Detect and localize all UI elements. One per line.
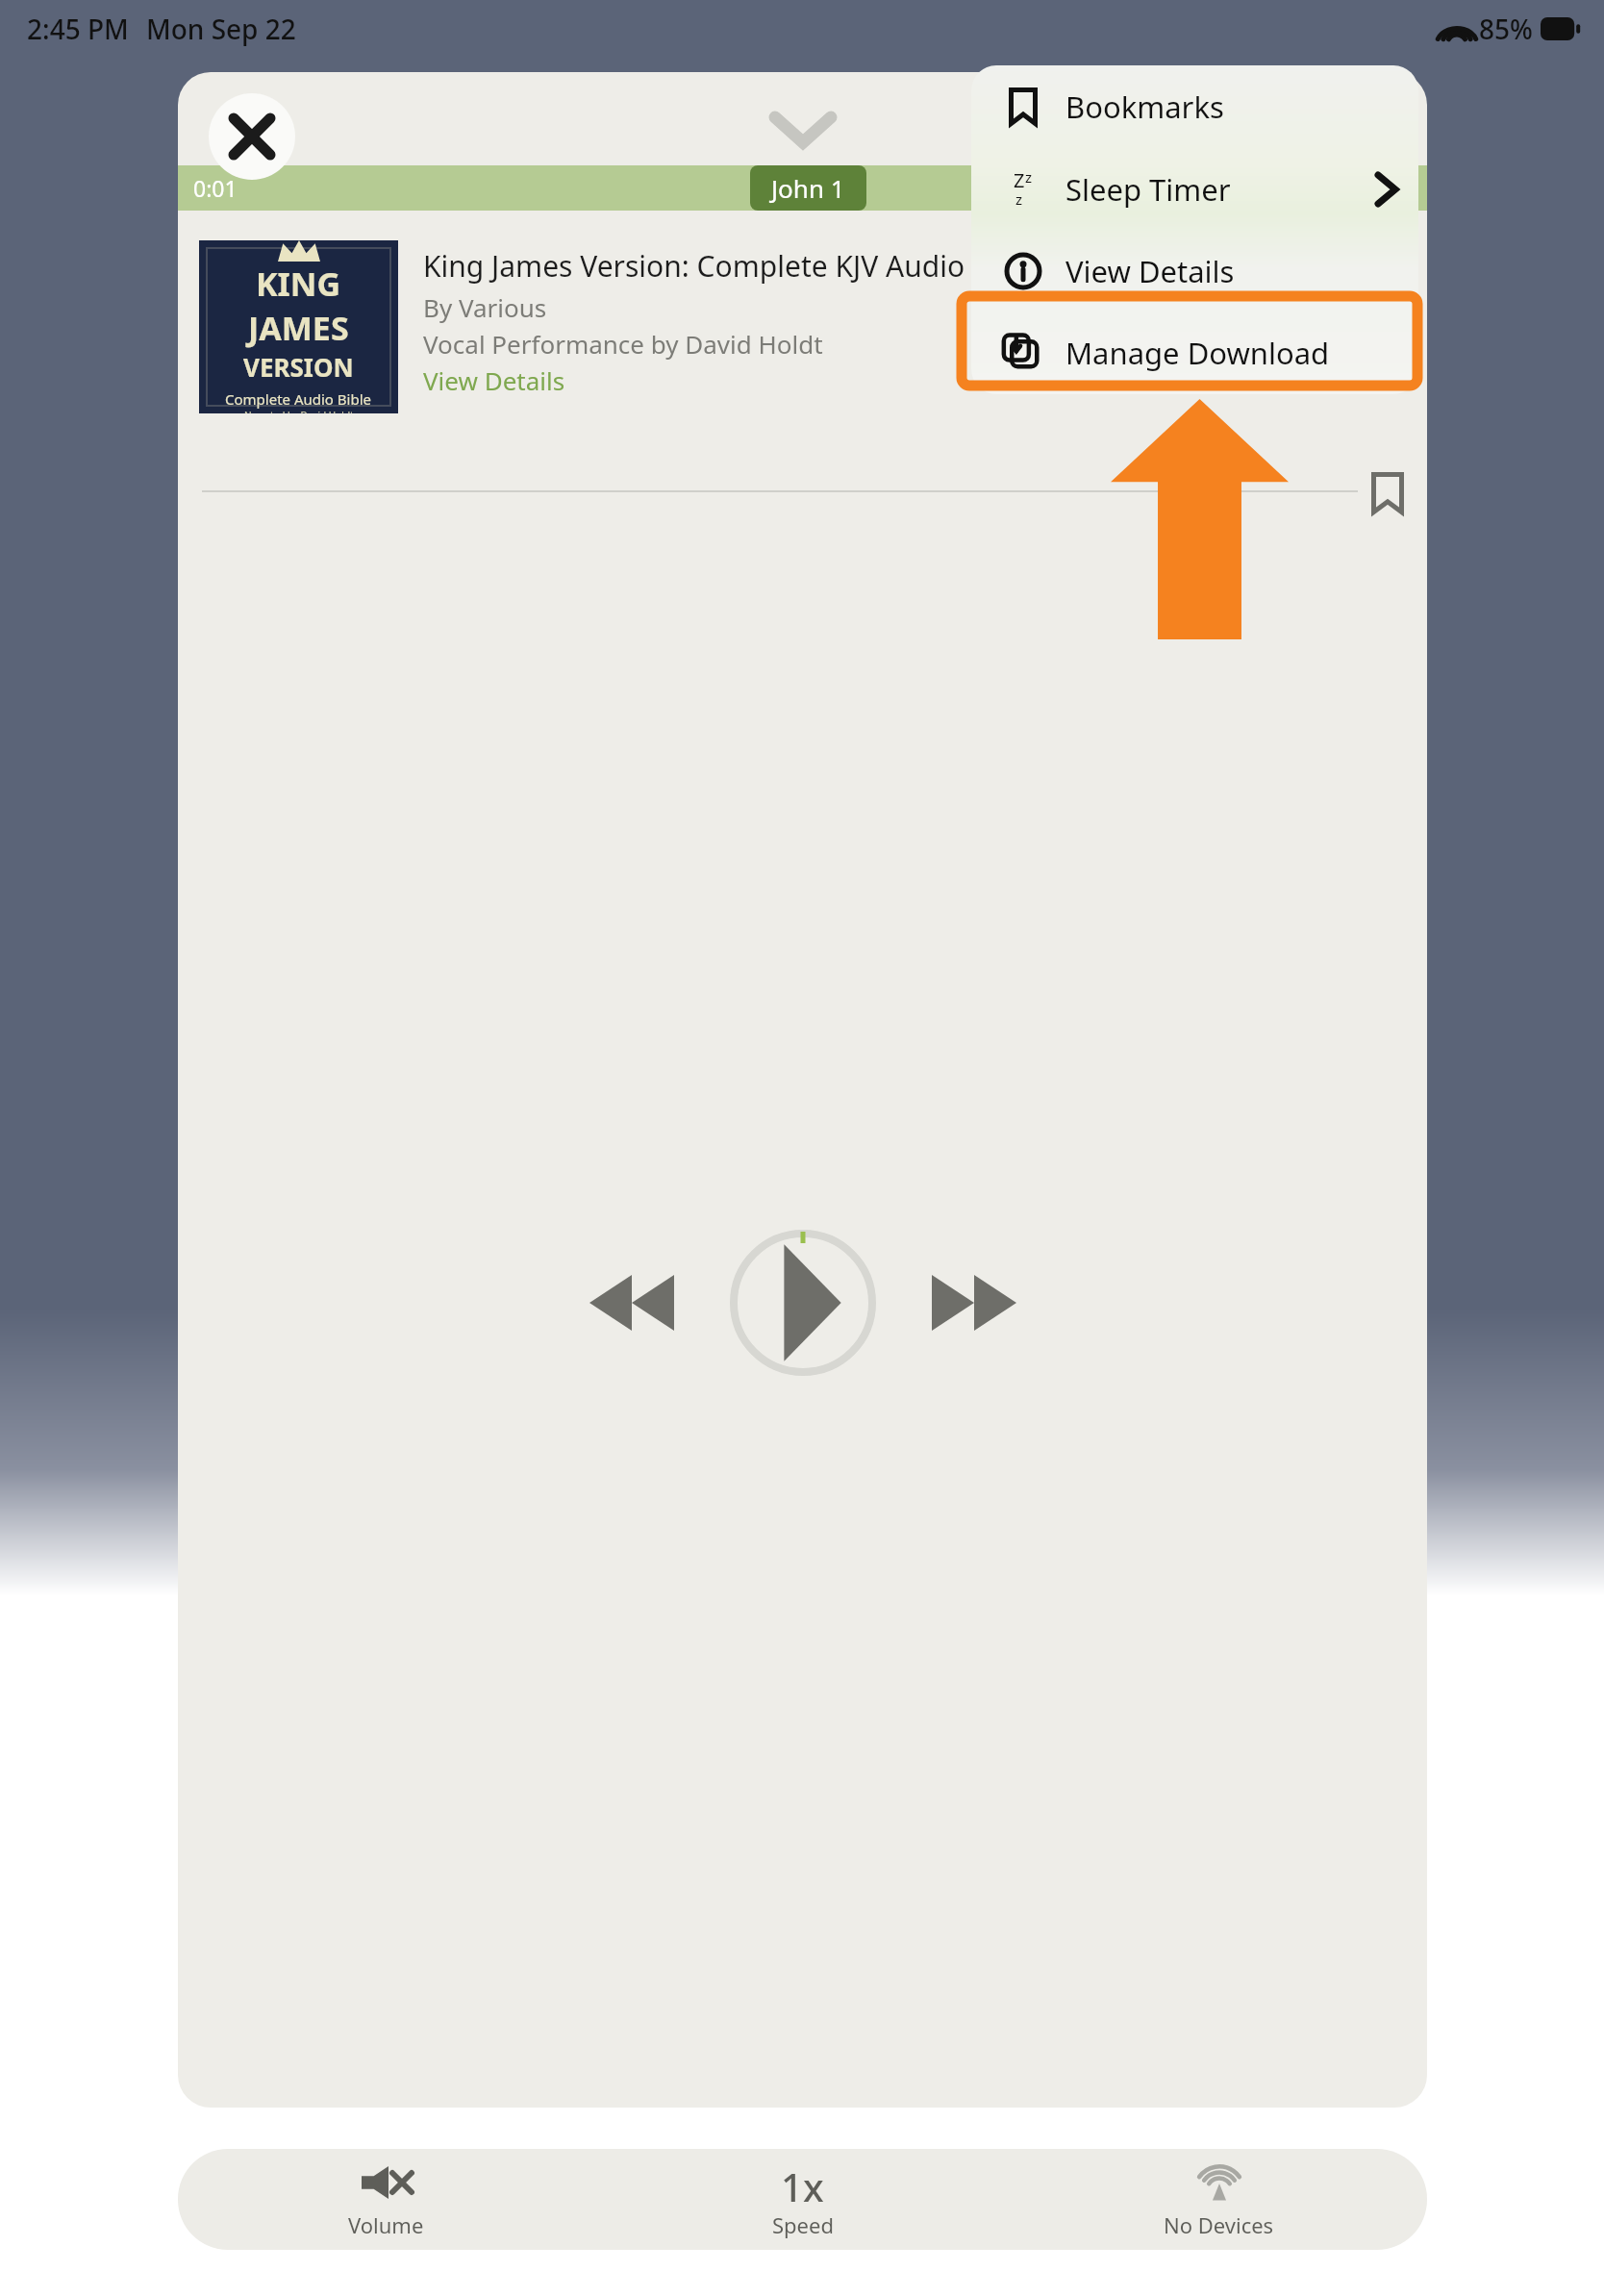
button[interactable]: 0:01 (178, 165, 1427, 211)
button[interactable]: Rewind (579, 1250, 685, 1356)
staticText: 1x (781, 2160, 824, 2205)
staticText: Mon Sep 22 (146, 11, 296, 47)
staticText: Manage Download (1065, 333, 1330, 373)
staticText: Bookmarks (1065, 87, 1224, 127)
button[interactable]: Z (971, 148, 1418, 230)
staticText: Volume (348, 2210, 424, 2239)
button[interactable]: Collapse player (760, 101, 846, 159)
staticText: Z (1014, 167, 1025, 193)
staticText: 85% (1479, 11, 1533, 47)
button[interactable]: Play (730, 1230, 876, 1376)
staticText: Vocal Performance by David Holdt (423, 327, 823, 361)
staticText: Speed (772, 2210, 834, 2239)
button[interactable]: KING (199, 240, 398, 413)
staticText: By Various (423, 290, 547, 324)
staticText: John 1 (771, 171, 845, 205)
staticText: VERSION (243, 350, 354, 384)
button[interactable]: Volume (178, 2149, 594, 2250)
staticText: 2:45 PM (27, 11, 129, 47)
staticText: z (1025, 167, 1033, 187)
staticText: Narrated by David Holdt (244, 409, 354, 413)
staticText: King James Version: Complete KJV Audio (423, 246, 965, 286)
button[interactable]: View Details (971, 230, 1418, 312)
staticText: No Devices (1164, 2210, 1274, 2239)
button[interactable]: No Devices (1011, 2149, 1427, 2250)
staticText: z (1015, 189, 1023, 209)
staticText: KING (256, 262, 341, 306)
button[interactable]: Bookmarks (971, 65, 1418, 148)
staticText: View Details (423, 363, 565, 397)
staticText: Complete Audio Bible (225, 389, 372, 409)
staticText: View Details (1065, 251, 1235, 291)
button[interactable]: 1x (594, 2149, 1011, 2250)
staticText: 0:01 (193, 173, 238, 203)
button[interactable]: Bookmark (1356, 462, 1419, 525)
button[interactable]: Manage Download (971, 312, 1418, 393)
button[interactable]: Close (209, 93, 295, 180)
staticText: Sleep Timer (1065, 169, 1231, 210)
button[interactable]: Fast forward (921, 1250, 1027, 1356)
button[interactable]: View Details (423, 363, 565, 397)
staticText: JAMES (248, 306, 349, 350)
